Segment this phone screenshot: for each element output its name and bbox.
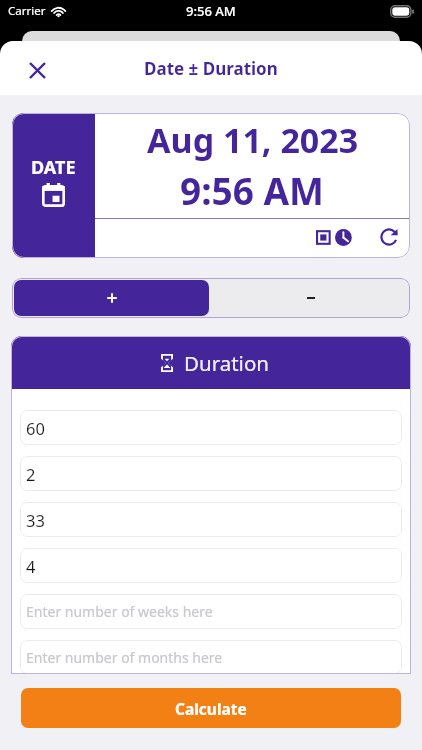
button[interactable] <box>211 278 410 318</box>
staticText: Duration <box>184 349 269 377</box>
staticText: Date ± Duration <box>144 57 278 80</box>
staticText: 9:56 AM <box>186 2 236 20</box>
staticText: Enter number of weeks here <box>26 602 213 621</box>
button[interactable]: Pick date and time <box>314 222 354 252</box>
staticText: Aug 11, 2023 <box>147 117 359 163</box>
staticText: 60 <box>26 417 45 439</box>
button[interactable]: Enter number of months here <box>20 640 402 674</box>
button[interactable]: 33 <box>20 502 402 537</box>
staticText: Carrier <box>8 3 46 19</box>
staticText: Calculate <box>175 698 247 719</box>
staticText: 9:56 AM <box>180 165 325 215</box>
button[interactable]: Calculate <box>21 688 401 728</box>
button[interactable]: 4 <box>20 548 402 583</box>
button[interactable] <box>14 280 209 316</box>
button[interactable]: Reset <box>374 222 404 252</box>
button[interactable]: 2 <box>20 456 402 491</box>
staticText: Enter number of months here <box>26 648 223 667</box>
staticText: DATE <box>31 155 76 180</box>
staticText: 33 <box>26 509 45 531</box>
button[interactable]: 60 <box>20 410 402 445</box>
staticText: 2 <box>26 463 36 485</box>
staticText: 4 <box>26 555 36 577</box>
button[interactable]: Enter number of weeks here <box>20 594 402 629</box>
button[interactable]: Close <box>20 53 54 87</box>
